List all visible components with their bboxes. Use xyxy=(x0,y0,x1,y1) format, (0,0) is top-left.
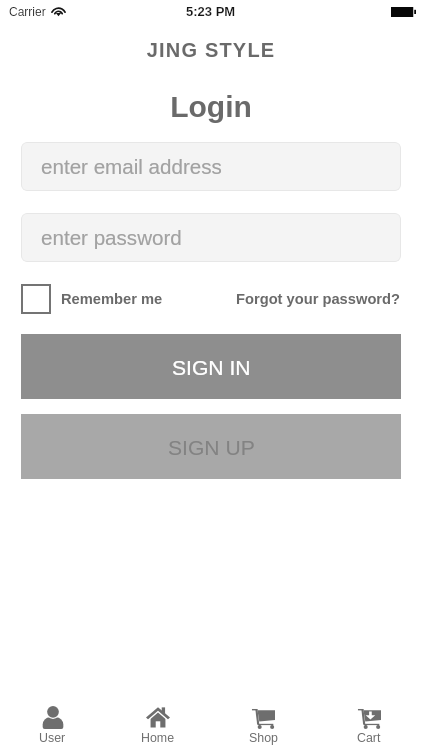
staticText: Remember me xyxy=(61,291,163,307)
button[interactable]: Home xyxy=(105,700,210,750)
staticText: enter email address xyxy=(41,155,222,178)
button[interactable]: enter email address xyxy=(21,142,401,191)
button[interactable]: Shop xyxy=(210,700,316,750)
button[interactable]: Remember me xyxy=(21,284,163,314)
staticText: Cart xyxy=(357,731,381,745)
staticText: SIGN IN xyxy=(172,356,251,380)
staticText: JING STYLE xyxy=(0,39,422,61)
staticText: SIGN UP xyxy=(168,436,255,460)
staticText: Login xyxy=(0,90,422,124)
button[interactable]: enter password xyxy=(21,213,401,262)
button[interactable]: SIGN IN xyxy=(21,334,401,399)
staticText: 5:23 PM xyxy=(186,4,236,19)
staticText: Home xyxy=(141,731,175,745)
button[interactable]: SIGN UP xyxy=(21,414,401,479)
staticText: Shop xyxy=(249,731,278,745)
button[interactable]: User xyxy=(0,700,105,750)
staticText: enter password xyxy=(41,226,182,249)
button[interactable]: Forgot your password? xyxy=(236,291,401,307)
staticText: User xyxy=(39,731,66,745)
staticText: Carrier xyxy=(9,5,46,18)
button[interactable]: Cart xyxy=(316,700,422,750)
